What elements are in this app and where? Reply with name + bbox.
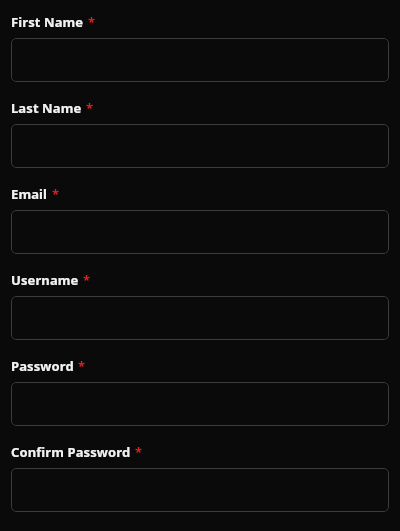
button[interactable] (11, 296, 389, 340)
staticText: * (88, 13, 96, 31)
staticText: Last Name (11, 99, 82, 117)
staticText: * (78, 357, 86, 375)
staticText: Confirm Password (11, 443, 131, 461)
button[interactable] (11, 210, 389, 254)
staticText: Email (11, 185, 48, 203)
staticText: * (83, 271, 91, 289)
staticText: * (86, 99, 94, 117)
button[interactable] (11, 38, 389, 82)
staticText: * (52, 185, 60, 203)
button[interactable] (11, 382, 389, 426)
staticText: First Name (11, 13, 84, 31)
button[interactable] (11, 468, 389, 512)
staticText: * (135, 443, 143, 461)
button[interactable] (11, 124, 389, 168)
staticText: Password (11, 357, 74, 375)
staticText: Username (11, 271, 79, 289)
